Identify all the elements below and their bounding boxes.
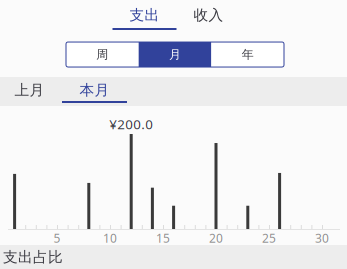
staticText: 5 [53, 230, 60, 246]
staticText: 30 [315, 230, 329, 246]
button[interactable]: 年 [211, 42, 284, 67]
staticText: 15 [156, 230, 170, 246]
button[interactable]: 周 [66, 42, 139, 67]
staticText: ¥200.0 [109, 115, 153, 133]
staticText: 收入 [193, 6, 223, 24]
button[interactable]: 支出 [112, 7, 176, 30]
staticText: 支出占比 [3, 248, 63, 266]
button[interactable]: 上月 [0, 82, 62, 103]
button[interactable]: 月 [139, 42, 211, 67]
button[interactable]: 本月 [62, 82, 127, 103]
staticText: 25 [262, 230, 276, 246]
staticText: 20 [209, 230, 223, 246]
staticText: 支出 [129, 6, 159, 24]
button[interactable]: 收入 [176, 7, 240, 30]
staticText: 年 [242, 47, 254, 62]
staticText: 上月 [14, 81, 44, 99]
staticText: 本月 [79, 81, 109, 99]
staticText: 10 [103, 230, 117, 246]
staticText: 月 [169, 47, 181, 62]
button[interactable]: 支出占比 [0, 245, 123, 269]
staticText: 周 [96, 47, 108, 62]
